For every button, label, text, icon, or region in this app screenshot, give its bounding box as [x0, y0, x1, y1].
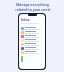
button[interactable] — [19, 46, 45, 50]
button[interactable] — [19, 30, 45, 34]
staticText: Manage everything — [16, 2, 49, 7]
staticText: related to your need — [15, 7, 50, 12]
button[interactable] — [19, 26, 45, 30]
button[interactable] — [19, 34, 45, 38]
button[interactable] — [19, 38, 45, 42]
staticText: Inbox — [21, 18, 30, 22]
button[interactable] — [19, 42, 45, 46]
button[interactable] — [19, 50, 45, 54]
